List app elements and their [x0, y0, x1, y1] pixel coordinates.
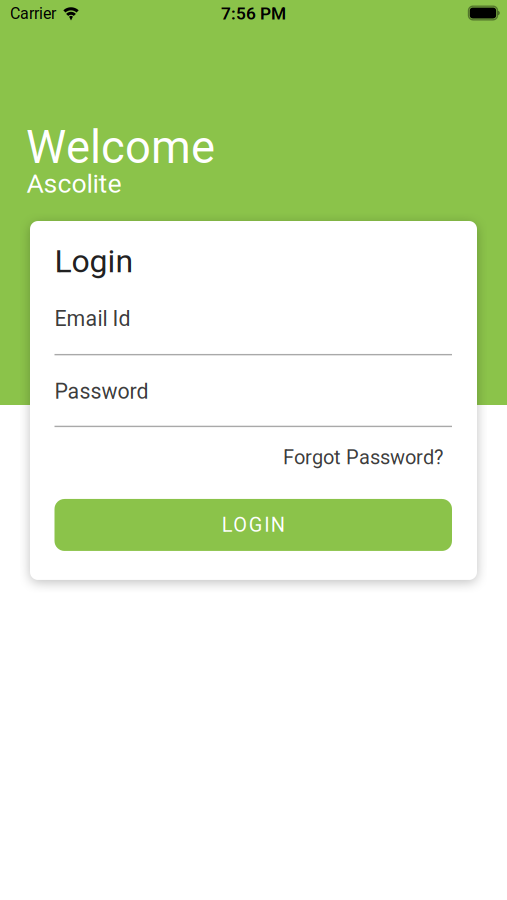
- button[interactable]: Email Id: [54, 307, 452, 355]
- staticText: Welcome: [26, 121, 215, 173]
- staticText: Carrier: [10, 4, 56, 23]
- button[interactable]: Password: [54, 379, 452, 427]
- staticText: Ascolite: [26, 168, 121, 199]
- staticText: LOGIN: [222, 513, 285, 536]
- button[interactable]: Forgot Password?: [283, 446, 452, 469]
- staticText: Email Id: [54, 307, 130, 331]
- staticText: 7:56 PM: [221, 4, 286, 23]
- staticText: Login: [54, 243, 133, 280]
- staticText: Password: [54, 379, 148, 404]
- button[interactable]: LOGIN: [54, 499, 452, 551]
- staticText: Forgot Password?: [283, 446, 443, 469]
